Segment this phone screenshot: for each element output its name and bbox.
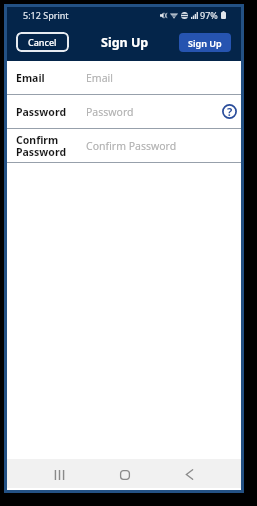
staticText: Confirm Password — [16, 133, 86, 159]
button[interactable]: Confirm Password — [7, 129, 241, 162]
staticText: Password — [86, 105, 221, 119]
button[interactable]: Email — [7, 61, 241, 94]
button[interactable]: Back — [157, 459, 222, 488]
button[interactable]: Home — [92, 459, 157, 488]
staticText: Confirm Password — [86, 139, 238, 153]
button[interactable]: Help — [221, 103, 238, 120]
button[interactable]: Sign Up — [179, 33, 231, 52]
staticText: Cancel — [28, 36, 57, 48]
staticText: Sign Up — [188, 37, 222, 49]
staticText: ? — [227, 104, 233, 119]
staticText: 5:12 Sprint — [23, 9, 69, 21]
button[interactable]: Cancel — [16, 32, 69, 52]
staticText: 97% — [200, 9, 218, 21]
staticText: Email — [16, 71, 86, 85]
staticText: Sign Up — [101, 34, 149, 51]
staticText: Password — [16, 105, 86, 119]
staticText: Email — [86, 71, 238, 85]
button[interactable]: Recents — [26, 459, 92, 488]
button[interactable]: Password — [7, 95, 241, 128]
